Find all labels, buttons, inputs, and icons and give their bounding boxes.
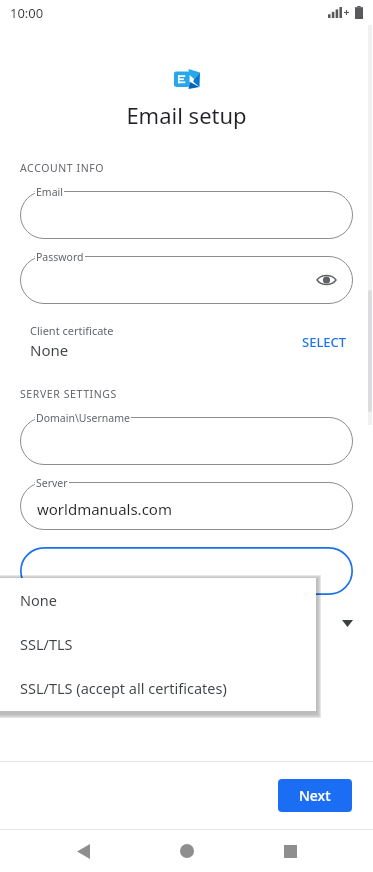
staticText: Client certificate xyxy=(30,323,114,338)
button[interactable]: Server xyxy=(20,482,353,530)
staticText: None xyxy=(20,590,57,610)
button[interactable]: Next xyxy=(278,779,352,812)
button[interactable]: Client certificate xyxy=(0,323,373,360)
staticText: SSL/TLS xyxy=(20,634,73,654)
staticText: SERVER SETTINGS xyxy=(20,387,117,401)
button[interactable]: Recent apps xyxy=(269,830,311,872)
staticText: Domain\Username xyxy=(36,411,130,425)
button[interactable]: SSL/TLS (accept all certificates) xyxy=(0,666,316,710)
staticText: Email xyxy=(36,185,63,199)
button[interactable]: SSL/TLS xyxy=(0,622,316,666)
button[interactable]: Domain\Username xyxy=(20,417,353,465)
button[interactable]: Home xyxy=(166,830,208,872)
button[interactable]: Email xyxy=(20,191,353,239)
button[interactable]: Password xyxy=(20,256,353,304)
staticText: 10:00 xyxy=(10,4,44,22)
staticText: None xyxy=(30,340,69,360)
button[interactable]: SSL/TLS xyxy=(0,613,373,633)
staticText: Next xyxy=(299,786,331,805)
button[interactable]: Show password xyxy=(313,267,339,293)
staticText: SELECT xyxy=(302,333,347,351)
staticText: SSL/TLS (accept all certificates) xyxy=(20,678,227,698)
staticText: Password xyxy=(36,250,84,264)
button[interactable]: Back xyxy=(62,830,104,872)
staticText: ACCOUNT INFO xyxy=(20,161,105,175)
staticText: SSL/TLS xyxy=(20,613,342,633)
staticText: Server xyxy=(36,476,68,490)
button[interactable]: SELECT xyxy=(296,327,353,357)
staticText: worldmanuals.com xyxy=(37,499,172,519)
button[interactable] xyxy=(20,547,353,595)
staticText: Email setup xyxy=(126,100,247,130)
button[interactable]: None xyxy=(0,578,316,622)
